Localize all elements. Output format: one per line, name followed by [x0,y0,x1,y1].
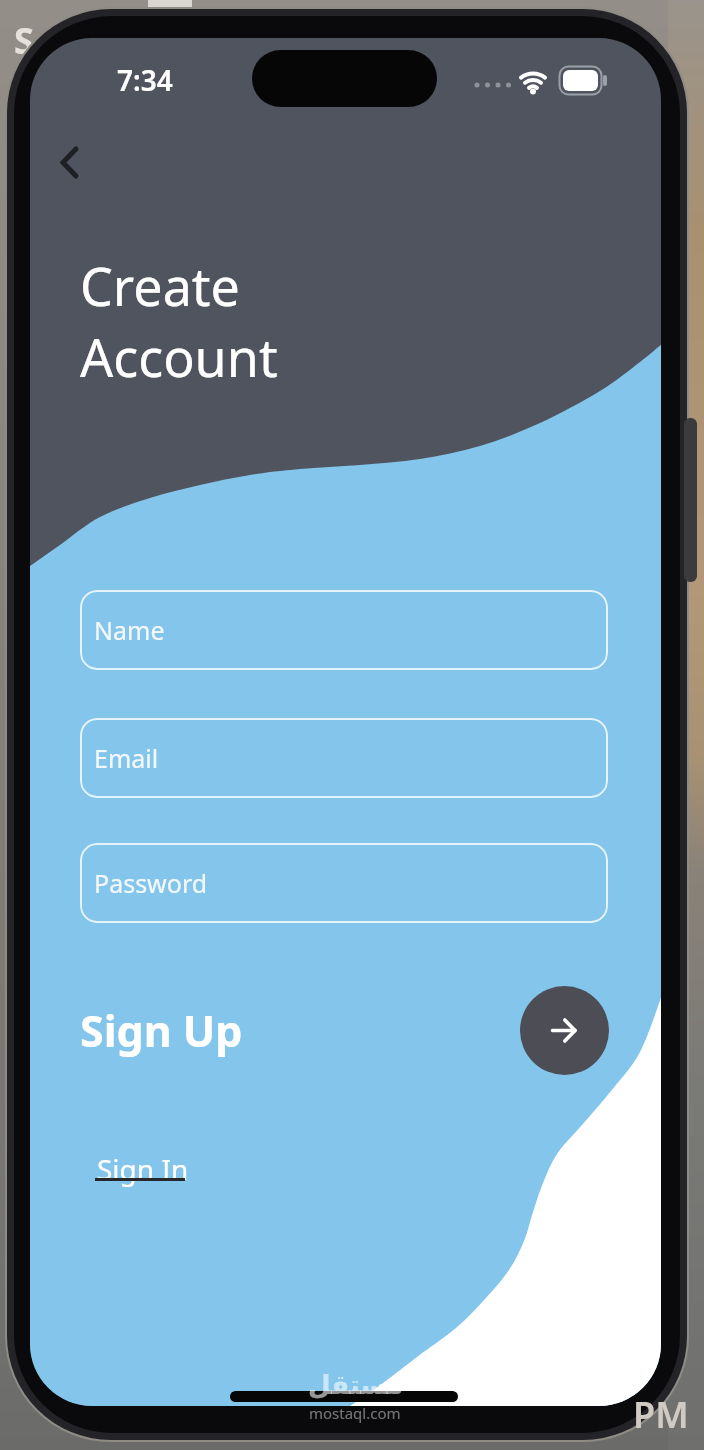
staticText: Name [94,613,165,647]
button[interactable]: Sign Up [80,1001,310,1063]
staticText: مستقل [308,1370,404,1400]
staticText: mostaql.com [309,1403,401,1423]
button[interactable]: Password [80,843,608,923]
button[interactable] [48,146,90,188]
staticText: Sign In [97,1150,189,1188]
button[interactable]: Sign In [97,1150,191,1190]
button[interactable]: Name [80,590,608,670]
staticText: Account [80,321,278,392]
staticText: Sign Up [80,1001,243,1060]
staticText: Email [94,741,159,775]
staticText: Password [94,866,208,900]
staticText: 7:34 [117,61,173,99]
staticText: Create [80,250,240,321]
button[interactable]: Email [80,718,608,798]
staticText: S [14,16,34,65]
button[interactable] [520,986,609,1075]
staticText: PM [633,1390,689,1439]
